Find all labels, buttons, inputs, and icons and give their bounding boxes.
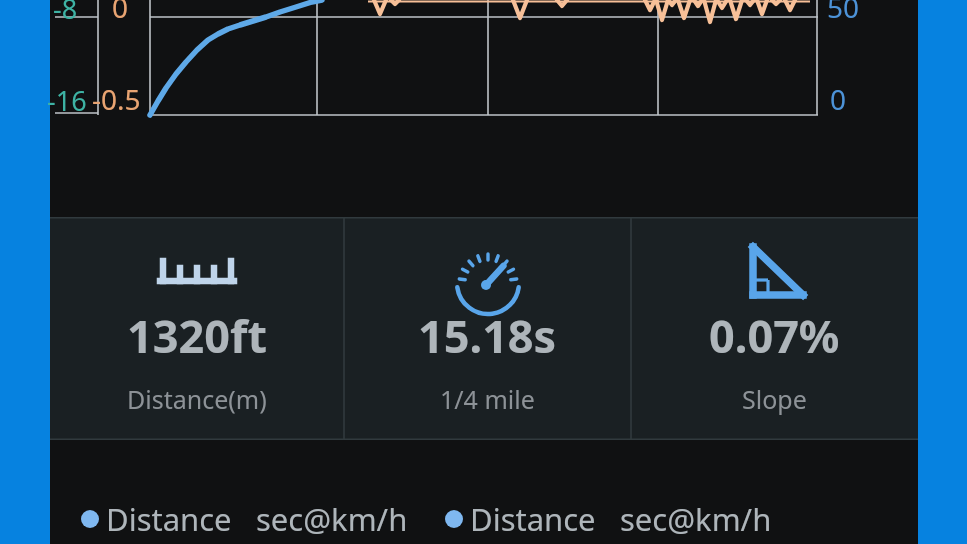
button[interactable]: Distance xyxy=(80,498,232,540)
staticText: 0 xyxy=(112,0,129,26)
button[interactable]: Distance xyxy=(444,498,596,540)
staticText: 50 xyxy=(827,0,860,26)
button[interactable]: Distance(m) 1320ft xyxy=(50,217,344,440)
staticText: sec@km/h xyxy=(620,498,772,540)
button[interactable]: Slope 0.07% xyxy=(631,217,918,440)
staticText: sec@km/h xyxy=(256,498,408,540)
staticText: Distance xyxy=(106,498,232,540)
staticText: -16 xyxy=(47,82,87,119)
staticText: Distance(m) xyxy=(127,382,267,416)
staticText: 0.07% xyxy=(709,305,840,366)
button[interactable]: 1/4 mile 15.18s xyxy=(344,217,631,440)
staticText: Slope xyxy=(742,382,807,416)
staticText: 1/4 mile xyxy=(440,382,535,416)
staticText: 0 xyxy=(830,80,847,118)
staticText: -0.5 xyxy=(92,80,141,118)
staticText: 15.18s xyxy=(418,305,557,366)
staticText: 1320ft xyxy=(127,305,267,366)
staticText: Distance xyxy=(470,498,596,540)
staticText: -8 xyxy=(53,0,78,27)
